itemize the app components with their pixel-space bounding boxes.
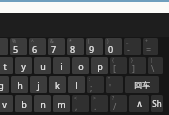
- staticText: >: [93, 95, 96, 102]
- staticText: o: [78, 60, 84, 72]
- staticText: [: [113, 62, 116, 74]
- staticText: ;: [90, 81, 93, 93]
- button[interactable]: +: [143, 38, 158, 55]
- button[interactable]: b: [15, 95, 32, 112]
- button[interactable]: }: [129, 57, 146, 74]
- button[interactable]: g: [0, 76, 9, 93]
- button[interactable]: m: [53, 95, 70, 112]
- staticText: ,: [75, 100, 78, 112]
- staticText: 8: [70, 43, 76, 55]
- staticText: |: [150, 57, 153, 64]
- staticText: .: [94, 100, 97, 112]
- button[interactable]: (: [86, 38, 103, 55]
- staticText: ": [108, 76, 111, 83]
- staticText: ': [109, 81, 112, 93]
- button[interactable]: l: [68, 76, 85, 93]
- staticText: h: [17, 79, 23, 91]
- button[interactable]: n: [34, 95, 51, 112]
- staticText: u: [40, 60, 46, 72]
- button[interactable]: ": [106, 76, 123, 93]
- button[interactable]: j: [30, 76, 47, 93]
- button[interactable]: >: [91, 95, 108, 112]
- staticText: t: [3, 60, 7, 72]
- staticText: 6: [32, 43, 38, 55]
- staticText: {: [112, 57, 114, 64]
- staticText: _: [126, 38, 129, 45]
- staticText: g: [0, 79, 4, 91]
- staticText: %: [12, 38, 17, 45]
- button[interactable]: |: [148, 57, 163, 74]
- staticText: /: [113, 100, 117, 112]
- button[interactable]: <: [72, 95, 89, 112]
- button[interactable]: %: [10, 38, 27, 55]
- staticText: :: [89, 76, 91, 83]
- staticText: Sh: [152, 98, 162, 109]
- button[interactable]: ?: [110, 95, 127, 112]
- button[interactable]: u: [34, 57, 51, 74]
- staticText: -: [127, 43, 130, 55]
- staticText: =: [146, 43, 152, 55]
- staticText: j: [37, 79, 40, 91]
- staticText: l: [75, 79, 78, 91]
- button[interactable]: ^: [29, 38, 46, 55]
- button[interactable]: t: [0, 57, 13, 74]
- staticText: 回车: [134, 80, 150, 90]
- button[interactable]: k: [49, 76, 66, 93]
- button[interactable]: _: [124, 38, 141, 55]
- button[interactable]: p: [91, 57, 108, 74]
- button[interactable]: y: [15, 57, 32, 74]
- button[interactable]: 回车: [125, 76, 159, 93]
- button[interactable]: &: [48, 38, 65, 55]
- button[interactable]: *: [67, 38, 84, 55]
- button[interactable]: Shift: [129, 95, 149, 112]
- staticText: m: [57, 98, 66, 110]
- button[interactable]: Sh: [151, 95, 163, 112]
- button[interactable]: ): [105, 38, 122, 55]
- staticText: b: [21, 98, 27, 110]
- staticText: ∧: [136, 99, 143, 109]
- staticText: ): [107, 38, 109, 45]
- staticText: k: [55, 79, 60, 91]
- staticText: *: [69, 38, 72, 45]
- button[interactable]: {: [110, 57, 127, 74]
- staticText: <: [74, 95, 77, 102]
- staticText: 5: [13, 43, 19, 55]
- button[interactable]: h: [11, 76, 28, 93]
- staticText: +: [145, 38, 148, 45]
- staticText: i: [60, 60, 63, 72]
- staticText: 0: [108, 43, 114, 55]
- staticText: 9: [89, 43, 95, 55]
- staticText: \: [151, 62, 155, 74]
- staticText: p: [97, 60, 103, 72]
- button[interactable]: o: [72, 57, 89, 74]
- button[interactable]: v: [0, 95, 13, 112]
- button[interactable]: i: [53, 57, 70, 74]
- staticText: ]: [132, 62, 135, 74]
- staticText: n: [40, 98, 46, 110]
- staticText: 7: [51, 43, 57, 55]
- staticText: &: [50, 38, 54, 45]
- staticText: ?: [112, 95, 115, 102]
- staticText: (: [88, 38, 90, 45]
- button[interactable]: :: [87, 76, 104, 93]
- staticText: y: [21, 60, 26, 72]
- staticText: ^: [31, 38, 34, 45]
- staticText: }: [131, 57, 133, 64]
- staticText: v: [2, 98, 7, 110]
